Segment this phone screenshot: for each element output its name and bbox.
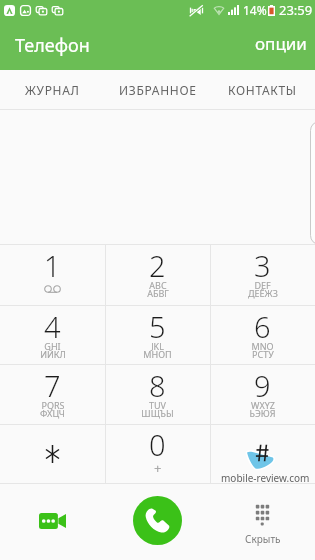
staticText: 14% bbox=[243, 2, 267, 18]
staticText: 7 bbox=[44, 366, 61, 405]
staticText: ДЕЁЖЗ bbox=[248, 287, 278, 299]
staticText: АБВГ bbox=[147, 287, 169, 299]
staticText: + bbox=[154, 459, 162, 477]
button[interactable]: Скрыть bbox=[210, 484, 315, 560]
staticText: ЖУРНАЛ bbox=[25, 82, 80, 98]
staticText: МНОП bbox=[143, 348, 172, 360]
staticText: ABC bbox=[149, 279, 167, 291]
button[interactable]: 4 bbox=[0, 305, 105, 364]
button[interactable]: 5 bbox=[105, 305, 210, 364]
staticText: TUV bbox=[149, 399, 166, 411]
staticText: опции bbox=[255, 32, 307, 55]
staticText: 4 bbox=[44, 307, 61, 346]
button[interactable]: 9 bbox=[210, 364, 315, 424]
staticText: GHI bbox=[44, 340, 61, 352]
staticText: 6 bbox=[254, 307, 271, 346]
staticText: 2 bbox=[149, 246, 166, 285]
staticText: ЬЭЮЯ bbox=[249, 407, 276, 419]
button[interactable]: ЖУРНАЛ bbox=[0, 70, 105, 110]
staticText: 3 bbox=[254, 246, 271, 285]
staticText: ФХЦЧ bbox=[40, 407, 65, 419]
staticText: КОНТАКТЫ bbox=[228, 82, 297, 98]
staticText: 23:59 bbox=[279, 1, 313, 19]
button[interactable]: 8 bbox=[105, 364, 210, 424]
staticText: ШЩЪЫ bbox=[141, 407, 174, 419]
staticText: 0 bbox=[149, 425, 166, 464]
staticText: JKL bbox=[151, 340, 164, 352]
button[interactable]: 3 bbox=[210, 244, 315, 305]
staticText: DEF bbox=[254, 279, 271, 291]
staticText: 9 bbox=[254, 366, 271, 405]
staticText: PQRS bbox=[41, 399, 65, 411]
staticText: 1 bbox=[44, 246, 61, 285]
button[interactable]: 1 bbox=[0, 244, 105, 305]
button[interactable] bbox=[210, 424, 315, 483]
button[interactable]: 2 bbox=[105, 244, 210, 305]
staticText: mobile-review.com bbox=[221, 471, 310, 485]
button[interactable]: 0 bbox=[105, 424, 210, 483]
button[interactable] bbox=[0, 424, 105, 483]
staticText: РСТУ bbox=[252, 348, 274, 360]
staticText: ИЙКЛ bbox=[40, 348, 66, 360]
button[interactable]: Вызов bbox=[105, 484, 210, 560]
button[interactable]: ИЗБРАННОЕ bbox=[105, 70, 210, 110]
staticText: MNO bbox=[251, 340, 274, 352]
staticText: 5 bbox=[149, 307, 166, 346]
staticText: 8 bbox=[149, 366, 166, 405]
staticText: WXYZ bbox=[251, 399, 275, 411]
button[interactable]: 7 bbox=[0, 364, 105, 424]
button[interactable]: опции bbox=[245, 19, 315, 68]
staticText: Скрыть bbox=[245, 532, 281, 546]
staticText: Телефон bbox=[15, 33, 90, 58]
button[interactable]: 6 bbox=[210, 305, 315, 364]
button[interactable]: Видеовызов bbox=[0, 484, 105, 560]
staticText: ИЗБРАННОЕ bbox=[119, 82, 197, 98]
button[interactable]: КОНТАКТЫ bbox=[210, 70, 315, 110]
